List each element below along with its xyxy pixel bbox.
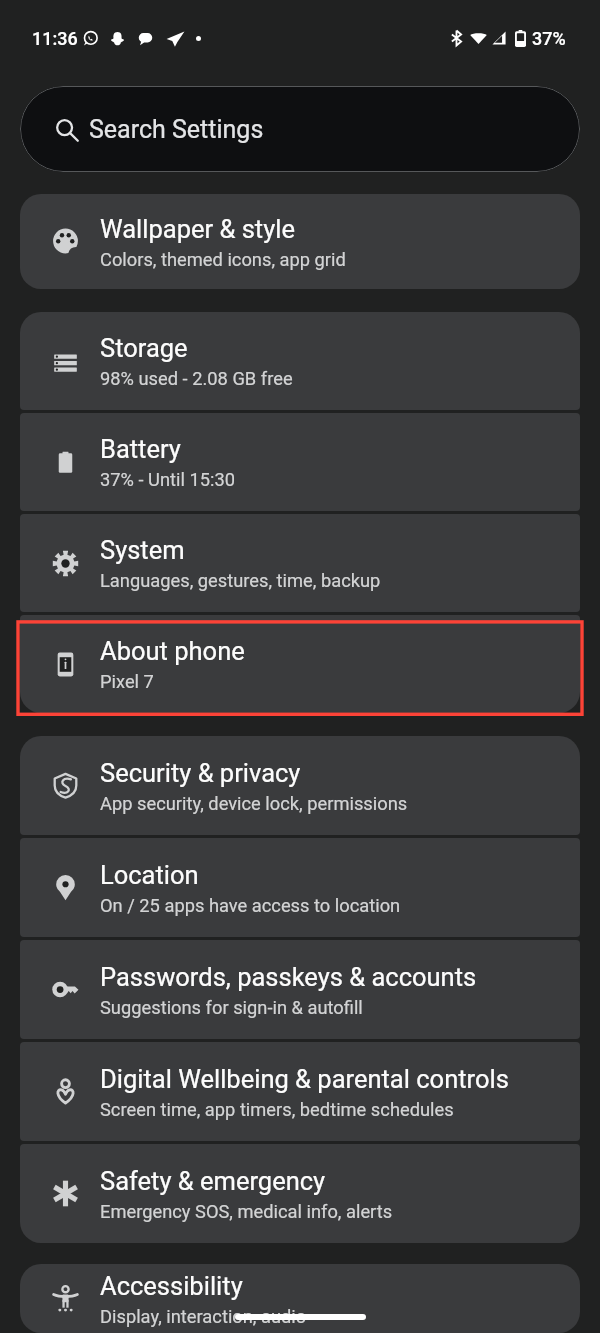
staticText: 98% used - 2.08 GB free [100,368,293,389]
staticText: Accessibility [100,1271,243,1301]
button[interactable]: Security & privacy [20,736,580,835]
button[interactable]: Accessibility [20,1264,580,1333]
staticText: Display, interaction, audio [100,1306,307,1327]
staticText: About phone [100,636,245,666]
button[interactable]: Search [20,86,580,172]
staticText: 11:36 [32,28,78,49]
staticText: Languages, gestures, time, backup [100,570,381,591]
button[interactable]: About phone [20,615,580,713]
staticText: Search Settings [89,115,264,144]
button[interactable]: Passwords, passkeys & accounts [20,940,580,1039]
button[interactable]: Battery [20,413,580,511]
staticText: Colors, themed icons, app grid [100,249,346,270]
staticText: Wallpaper & style [100,214,295,244]
button[interactable]: Storage [20,312,580,410]
staticText: System [100,535,185,565]
staticText: Digital Wellbeing & parental controls [100,1064,509,1094]
staticText: 37% - Until 15:30 [100,469,236,490]
staticText: On / 25 apps have access to location [100,895,401,916]
button[interactable]: Digital Wellbeing & parental controls [20,1042,580,1141]
staticText: Location [100,860,199,890]
staticText: Battery [100,434,181,464]
staticText: Emergency SOS, medical info, alerts [100,1201,393,1222]
staticText: Suggestions for sign-in & autofill [100,997,363,1018]
other: Search [55,118,79,142]
staticText: Security & privacy [100,758,301,788]
button[interactable]: Safety & emergency [20,1144,580,1243]
staticText: 37% [532,28,566,49]
staticText: Storage [100,333,188,363]
staticText: Passwords, passkeys & accounts [100,962,477,992]
staticText: Pixel 7 [100,671,154,692]
button[interactable]: System [20,514,580,612]
button[interactable]: Wallpaper & style [20,194,580,289]
staticText: Screen time, app timers, bedtime schedul… [100,1099,454,1120]
staticText: App security, device lock, permissions [100,793,408,814]
button[interactable]: Location [20,838,580,937]
staticText: Safety & emergency [100,1166,326,1196]
